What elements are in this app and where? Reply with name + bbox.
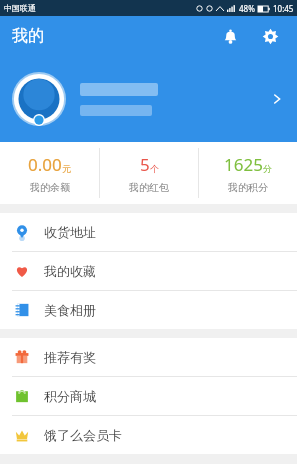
staticText: 推荐有奖 — [44, 349, 96, 365]
staticText: 收货地址 — [44, 224, 96, 240]
staticText: 美食相册 — [44, 302, 96, 318]
staticText: 积分商城 — [44, 388, 96, 404]
staticText: 元 — [62, 163, 71, 174]
button[interactable]: Settings — [253, 19, 287, 53]
staticText: 我的收藏 — [44, 263, 96, 279]
button[interactable]: 我的收藏 — [0, 252, 297, 290]
button[interactable]: 美食相册 — [0, 291, 297, 329]
staticText: 48% — [239, 3, 255, 14]
staticText: 我的 — [12, 26, 44, 46]
button[interactable]: 收货地址 — [0, 213, 297, 251]
staticText: 饿了么会员卡 — [44, 427, 122, 443]
staticText: 1625 — [224, 153, 263, 176]
button[interactable] — [0, 56, 297, 142]
staticText: 5 — [140, 153, 150, 176]
button[interactable]: 5 — [100, 142, 198, 204]
button[interactable]: 0.00 — [0, 142, 99, 204]
button[interactable]: 积分商城 — [0, 377, 297, 415]
button[interactable]: Notifications — [213, 19, 247, 53]
button[interactable]: 1625 — [199, 142, 297, 204]
staticText: 我的余额 — [30, 181, 70, 194]
button[interactable]: 推荐有奖 — [0, 338, 297, 376]
staticText: 中国联通 — [4, 3, 36, 13]
staticText: 10:45 — [273, 3, 294, 14]
staticText: 0.00 — [28, 153, 62, 176]
button[interactable]: 饿了么会员卡 — [0, 416, 297, 454]
staticText: 我的积分 — [228, 181, 268, 194]
staticText: 分 — [263, 163, 272, 174]
staticText: 我的红包 — [129, 181, 169, 194]
staticText: 个 — [150, 163, 159, 174]
